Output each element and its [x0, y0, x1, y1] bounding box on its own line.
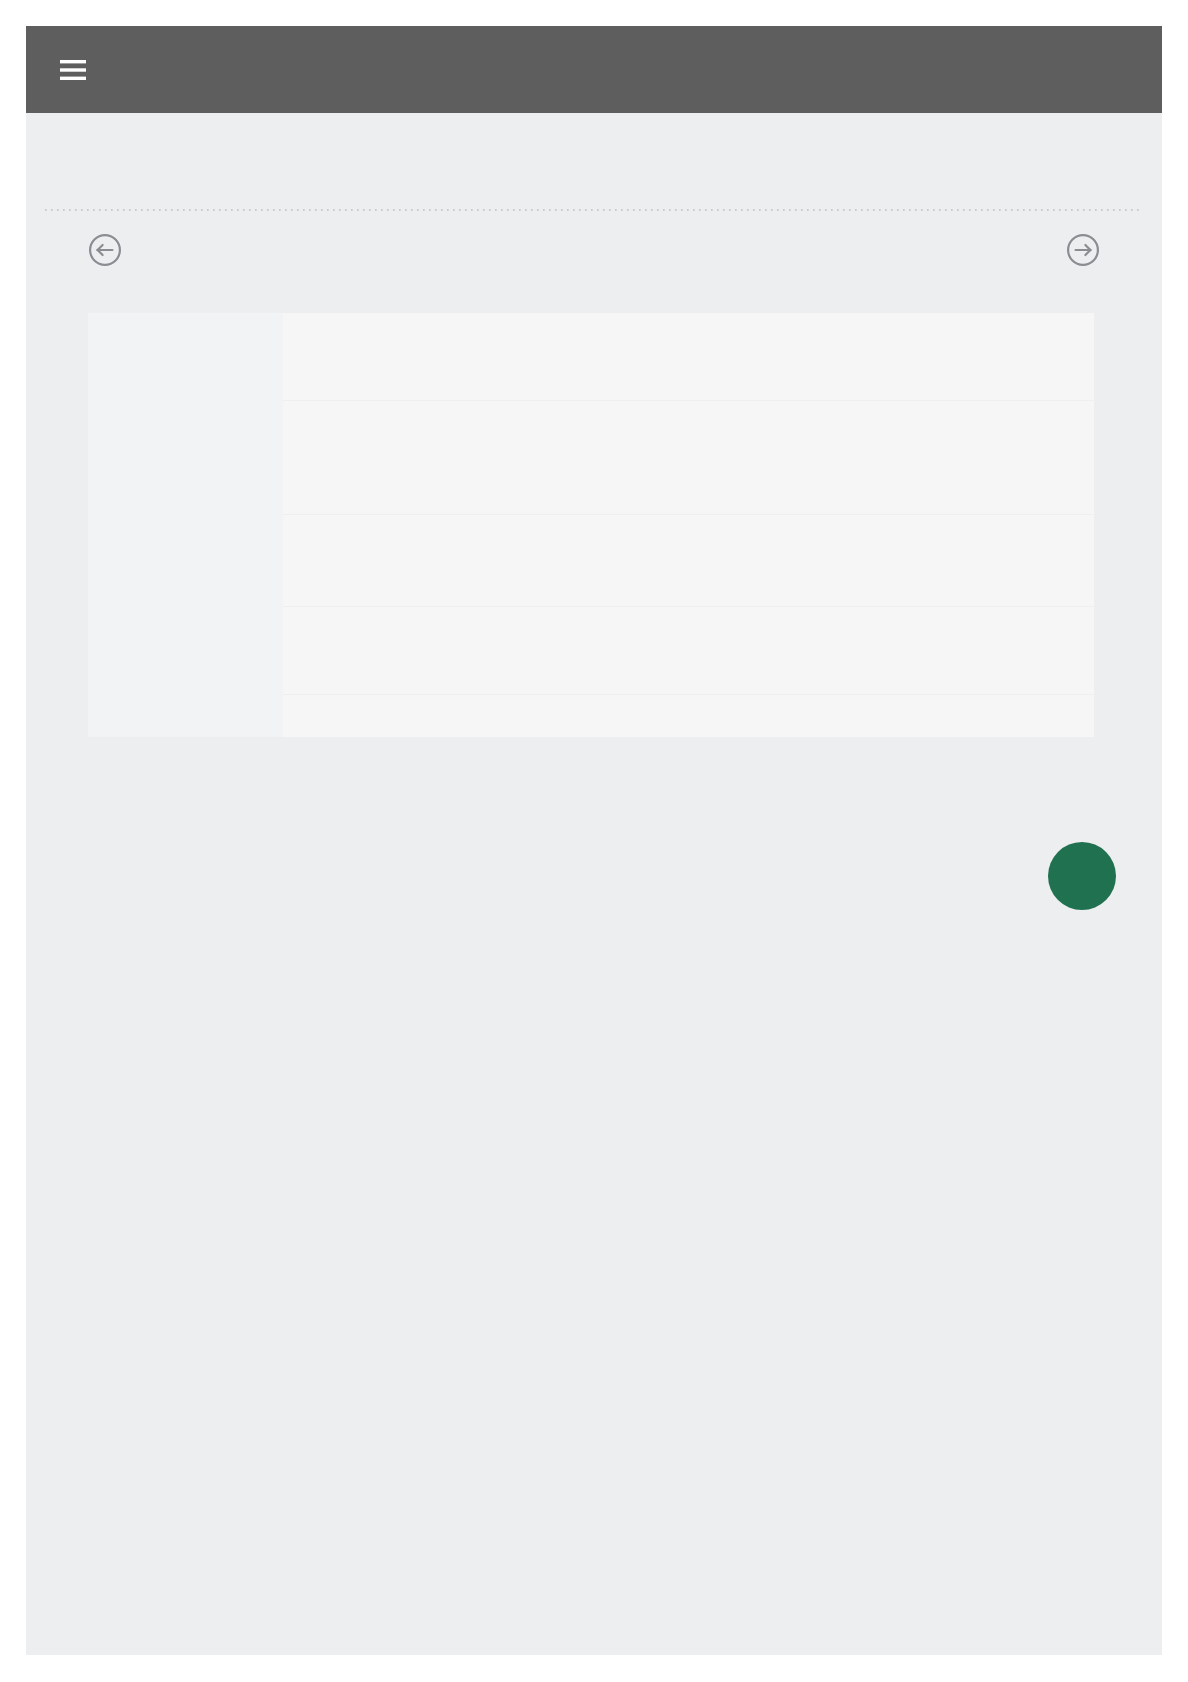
button[interactable]: Next: [1057, 224, 1109, 276]
button[interactable]: Add: [1048, 842, 1116, 910]
button[interactable]: Previous: [79, 224, 131, 276]
button[interactable]: Open navigation menu: [49, 46, 97, 94]
